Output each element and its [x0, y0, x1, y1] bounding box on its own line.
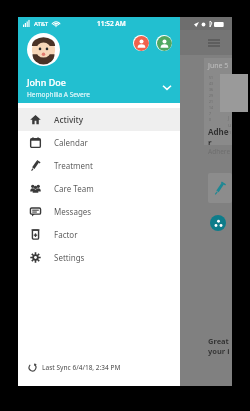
staticText: 21 — [209, 99, 214, 104]
staticText: AT&T — [34, 20, 49, 28]
staticText: 7 — [209, 111, 212, 116]
staticText: June 5 — [208, 61, 229, 71]
staticText: your i — [208, 346, 230, 356]
button[interactable]: Messages — [18, 200, 180, 223]
staticText: 14 — [209, 105, 214, 110]
staticText: 36 — [209, 87, 214, 92]
button[interactable]: Profile photo — [27, 33, 60, 66]
staticText: Settings — [54, 252, 85, 263]
staticText: Activity — [54, 114, 84, 125]
other: Menu — [208, 37, 220, 49]
button[interactable]: John Doe — [18, 71, 180, 103]
staticText: 43 — [209, 81, 214, 86]
button[interactable]: Factor — [18, 223, 180, 246]
staticText: Messages — [54, 206, 92, 217]
staticText: Great — [208, 336, 229, 346]
staticText: Care Team — [54, 183, 94, 194]
button[interactable]: Add patient — [133, 35, 149, 51]
button[interactable]: Activity — [18, 108, 180, 131]
staticText: Adher — [208, 126, 232, 145]
staticText: Last Sync 6/4/18, 2:34 PM — [42, 363, 121, 372]
staticText: Adhere — [208, 147, 231, 156]
button[interactable]: Care Team — [18, 177, 180, 200]
button[interactable]: Treatment — [18, 154, 180, 177]
staticText: 29 — [209, 93, 214, 98]
staticText: 51 — [209, 75, 214, 80]
staticText: Hemophilia A Severe — [27, 90, 91, 99]
button[interactable]: Last Sync 6/4/18, 2:34 PM — [18, 358, 180, 376]
staticText: Treatment — [54, 160, 93, 171]
button[interactable]: Calendar — [18, 131, 180, 154]
staticText: 11:52 AM — [97, 19, 126, 28]
button[interactable]: Settings — [18, 246, 180, 269]
button[interactable]: Switch user — [156, 35, 172, 51]
staticText: Factor — [54, 229, 78, 240]
staticText: John Doe — [27, 76, 66, 88]
staticText: Jun — [228, 115, 232, 136]
staticText: Calendar — [54, 137, 88, 148]
staticText: 0 — [209, 117, 212, 122]
